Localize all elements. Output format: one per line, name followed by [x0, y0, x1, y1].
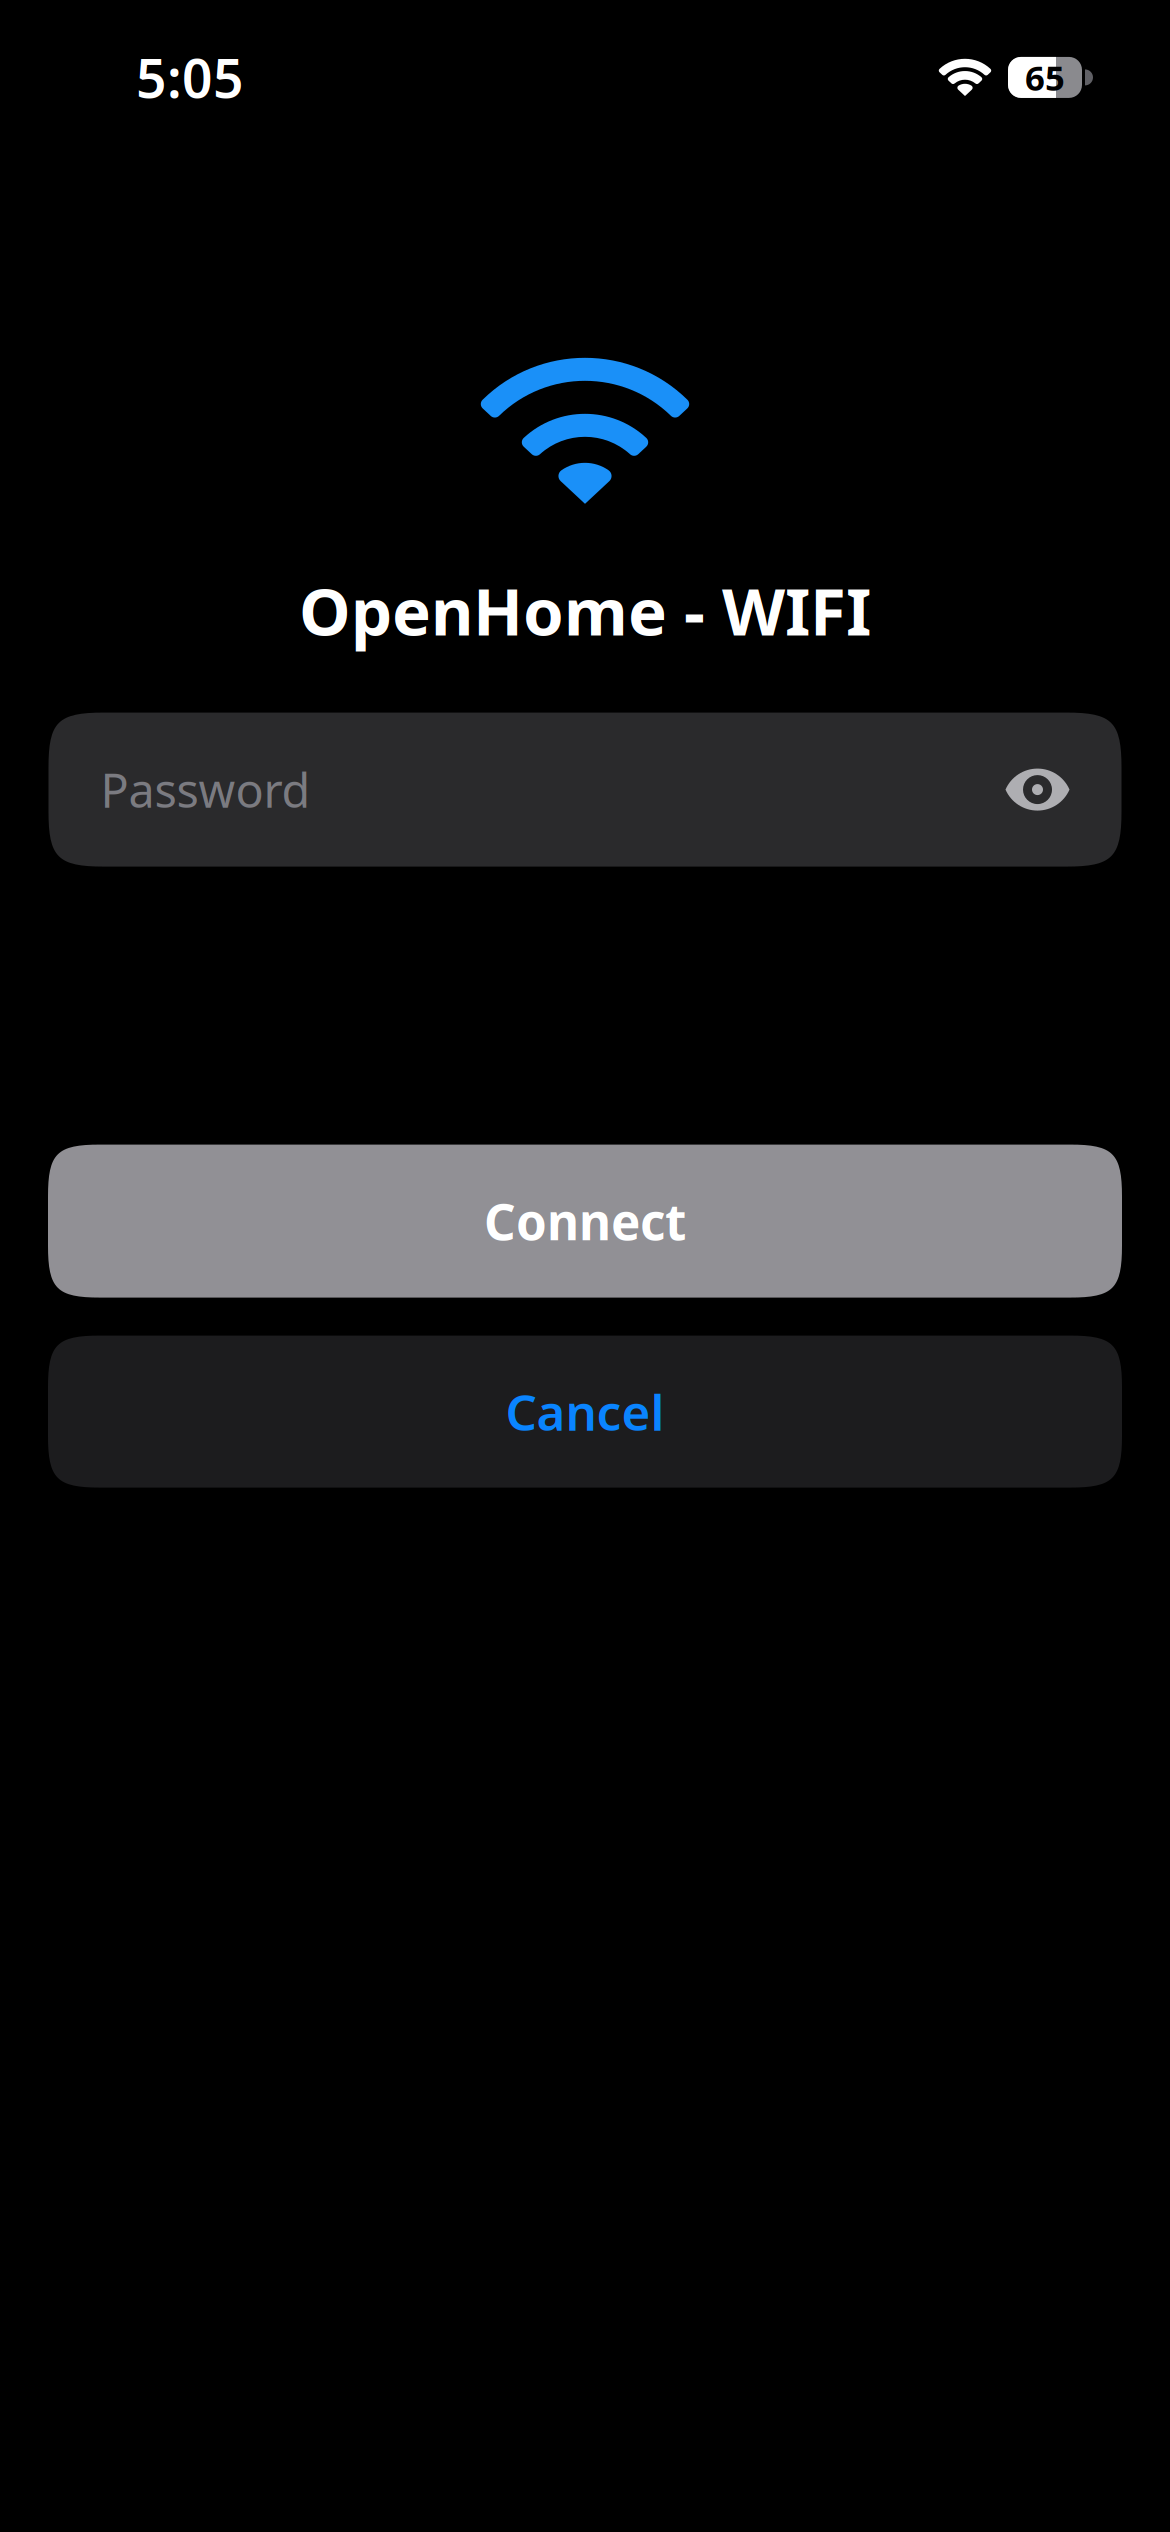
button[interactable]: Cancel [48, 1336, 1122, 1488]
staticText: 65 [1025, 54, 1065, 100]
button[interactable]: Connect [48, 1145, 1122, 1298]
staticText: OpenHome - WIFI [299, 567, 871, 654]
staticText: Cancel [505, 1379, 664, 1444]
button[interactable]: Show password [1005, 769, 1069, 811]
staticText: 5:05 [136, 42, 244, 113]
staticText: Connect [484, 1188, 686, 1254]
staticText: Password [100, 759, 310, 821]
